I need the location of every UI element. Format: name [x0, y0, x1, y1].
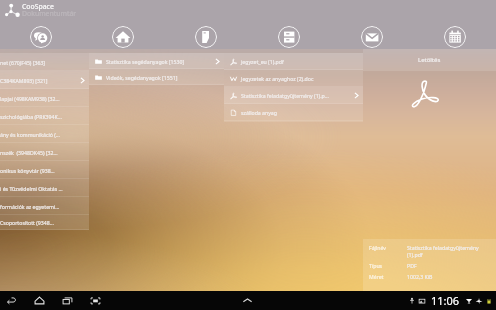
- button[interactable]: Home: [33, 294, 46, 307]
- button[interactable]: Documents: [247, 26, 330, 48]
- button[interactable]: Bookmarks: [164, 26, 247, 48]
- staticText: formációk az egyetemi…: [0, 203, 60, 210]
- staticText: Fájlnév: [369, 244, 407, 251]
- staticText: Statisztika feladatgyűjtemény (1).p…: [241, 92, 329, 99]
- button[interactable]: nszék (3948DK45) [32…: [0, 143, 89, 161]
- button[interactable]: Statisztika feladatgyűjtemény (1).p…: [224, 87, 363, 104]
- staticText: Letöltés: [418, 56, 441, 64]
- button[interactable]: Back: [5, 294, 18, 307]
- staticText: Videók, segédanyagok [1551]: [106, 74, 178, 81]
- staticText: 1002,3 KiB: [407, 273, 433, 280]
- button[interactable]: lapjai (498KAM938) [32…: [0, 89, 89, 107]
- staticText: C384KAM893) [321]: [0, 77, 48, 84]
- staticText: i és Tűzvédelmi Oktatás …: [0, 185, 63, 192]
- button[interactable]: C384KAM893) [321]: [0, 71, 89, 89]
- button[interactable]: Home: [82, 26, 164, 48]
- button[interactable]: Messages: [330, 26, 413, 48]
- button[interactable]: net (670JF45) [363]: [0, 53, 89, 71]
- button[interactable]: Screenshot: [89, 294, 102, 307]
- staticText: Jegyzetek az anyaghoz (2).doc: [241, 75, 314, 82]
- staticText: PDF: [407, 262, 417, 269]
- staticText: ány és kommunikáció (…: [0, 131, 60, 138]
- staticText: szálloda anyag: [241, 109, 277, 116]
- staticText: lapjai (498KAM938) [32…: [0, 95, 60, 102]
- staticText: net (670JF45) [363]: [0, 59, 46, 66]
- button[interactable]: Jegyzetek az anyaghoz (2).doc: [224, 70, 363, 87]
- button[interactable]: Forums: [0, 26, 82, 48]
- button[interactable]: szichológiába (PRK394K…: [0, 107, 89, 125]
- button[interactable]: Csoportosított (9348…: [0, 215, 89, 230]
- staticText: Dokumentumtár: [22, 9, 77, 18]
- button[interactable]: ány és kommunikáció (…: [0, 125, 89, 143]
- staticText: szichológiába (PRK394K…: [0, 113, 62, 120]
- button[interactable]: Expand: [241, 294, 254, 307]
- button[interactable]: jegyzet_eu (1).pdf: [224, 53, 363, 70]
- button[interactable]: Videók, segédanyagok [1551]: [89, 69, 224, 85]
- staticText: jegyzet_eu (1).pdf: [241, 58, 284, 65]
- button[interactable]: Recent apps: [61, 294, 74, 307]
- button[interactable]: szálloda anyag: [224, 104, 363, 121]
- button[interactable]: formációk az egyetemi…: [0, 197, 89, 215]
- button[interactable]: Statisztika segédanyagok [1530]: [89, 53, 224, 69]
- staticText: Csoportosított (9348…: [0, 219, 54, 226]
- button[interactable]: i és Tűzvédelmi Oktatás …: [0, 179, 89, 197]
- staticText: Statisztika feladatgyűjtemény (1).pdf: [407, 244, 493, 258]
- button[interactable]: Letöltés: [363, 49, 496, 71]
- staticText: Méret: [369, 273, 407, 280]
- staticText: nszék (3948DK45) [32…: [0, 149, 58, 156]
- staticText: CooSpace: [22, 2, 54, 11]
- button[interactable]: Calendar: [413, 26, 496, 48]
- staticText: Statisztika segédanyagok [1530]: [106, 58, 185, 65]
- button[interactable]: onikus könyvtár (938…: [0, 161, 89, 179]
- staticText: 11:06: [431, 293, 460, 308]
- staticText: onikus könyvtár (938…: [0, 167, 55, 174]
- staticText: Típus: [369, 262, 407, 269]
